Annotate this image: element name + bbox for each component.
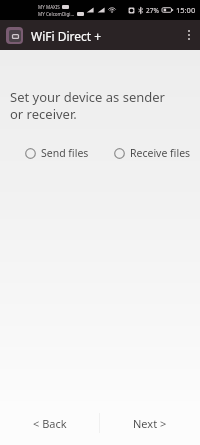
staticText: < Back [33,416,67,431]
button[interactable]: Receive files [113,144,192,162]
button[interactable]: More options [178,20,200,50]
button[interactable]: Next > [100,401,200,445]
staticText: Send files [41,146,89,160]
button[interactable]: Send files [24,144,90,162]
staticText: MY MAXIS [38,4,60,10]
staticText: 27% [146,6,159,15]
staticText: WiFi Direct + [31,28,102,44]
staticText: Set your device as sender or receiver. [10,88,178,123]
staticText: Receive files [130,146,191,160]
button[interactable]: < Back [0,401,99,445]
staticText: MY CelcomDigi... [38,11,75,17]
staticText: 15:00 [176,5,196,15]
staticText: Next > [133,416,167,431]
